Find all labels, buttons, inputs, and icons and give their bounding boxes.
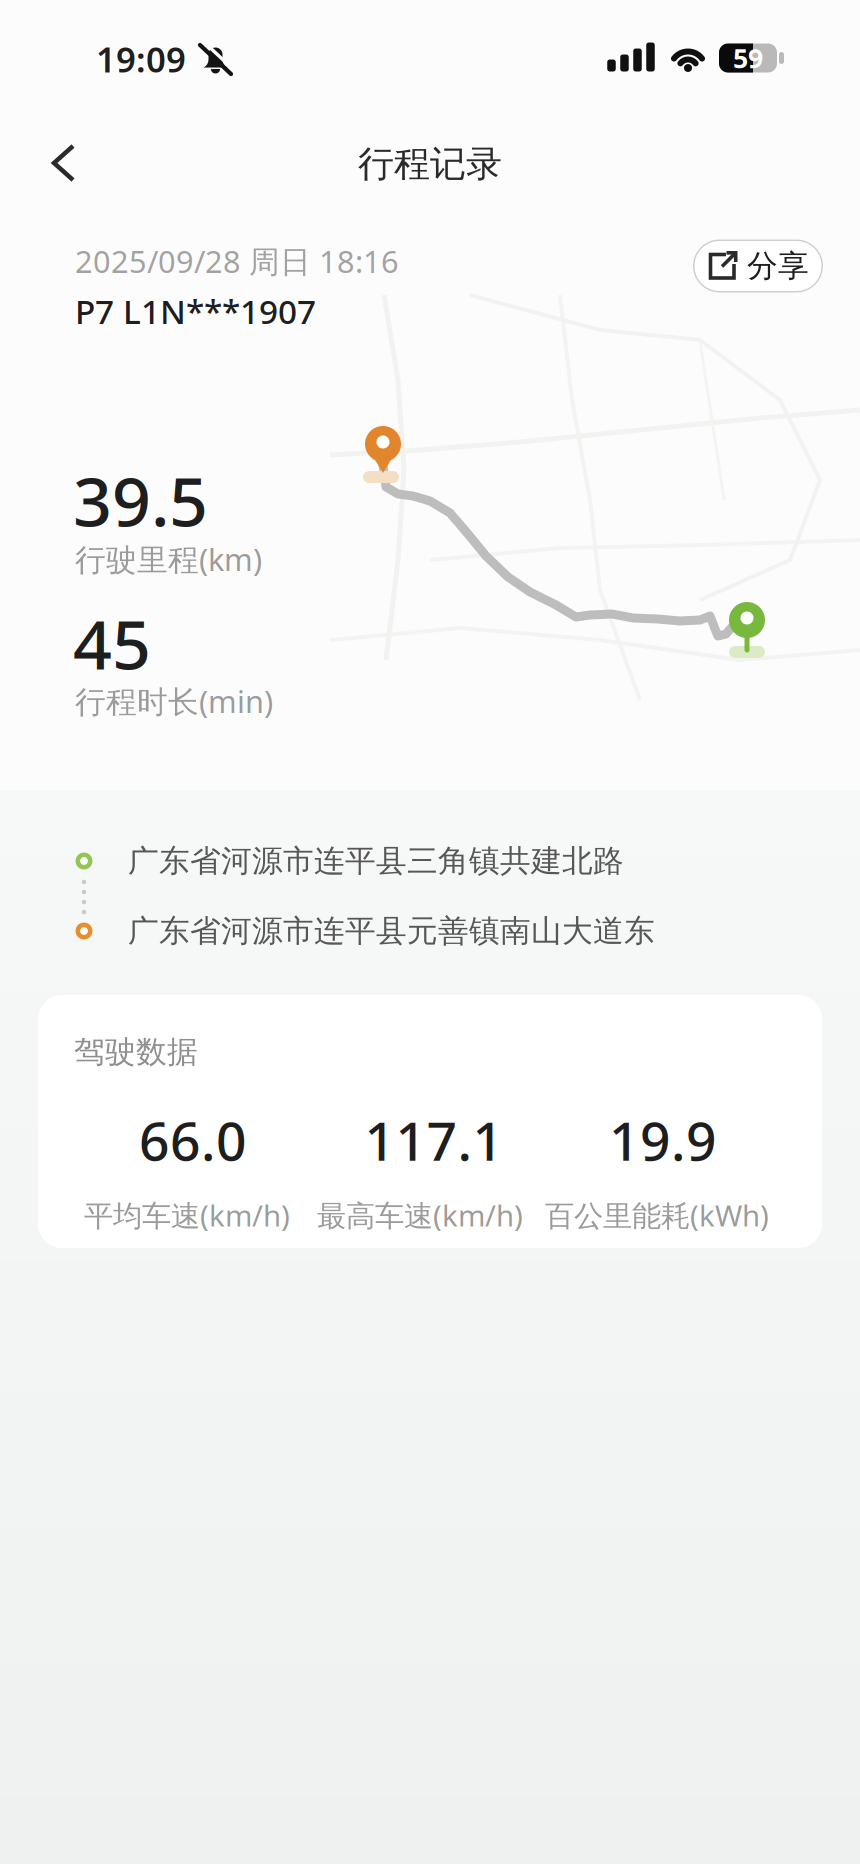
staticText: 19:09 xyxy=(96,36,186,82)
staticText: 19.9 xyxy=(609,1105,717,1175)
staticText: 广东省河源市连平县三角镇共建北路 xyxy=(128,842,624,880)
staticText: 39.5 xyxy=(73,455,208,545)
staticText: 行驶里程(km) xyxy=(75,539,262,579)
staticText: 百公里能耗(kWh) xyxy=(545,1195,769,1234)
staticText: 行程时长(min) xyxy=(75,681,273,721)
staticText: 驾驶数据 xyxy=(74,1033,198,1071)
staticText: 59 xyxy=(733,40,763,76)
staticText: 平均车速(km/h) xyxy=(84,1195,290,1234)
staticText: 最高车速(km/h) xyxy=(317,1195,523,1234)
staticText: 45 xyxy=(73,598,151,688)
button[interactable]: Back xyxy=(39,137,129,189)
staticText: 2025/09/28 周日 18:16 xyxy=(75,241,399,281)
staticText: 分享 xyxy=(747,247,809,285)
button[interactable]: 分享 xyxy=(693,239,823,292)
staticText: 66.0 xyxy=(139,1105,247,1175)
staticText: 117.1 xyxy=(364,1105,503,1175)
staticText: 行程记录 xyxy=(358,142,502,186)
staticText: P7 L1N***1907 xyxy=(75,289,316,333)
staticText: 广东省河源市连平县元善镇南山大道东 xyxy=(128,912,655,950)
